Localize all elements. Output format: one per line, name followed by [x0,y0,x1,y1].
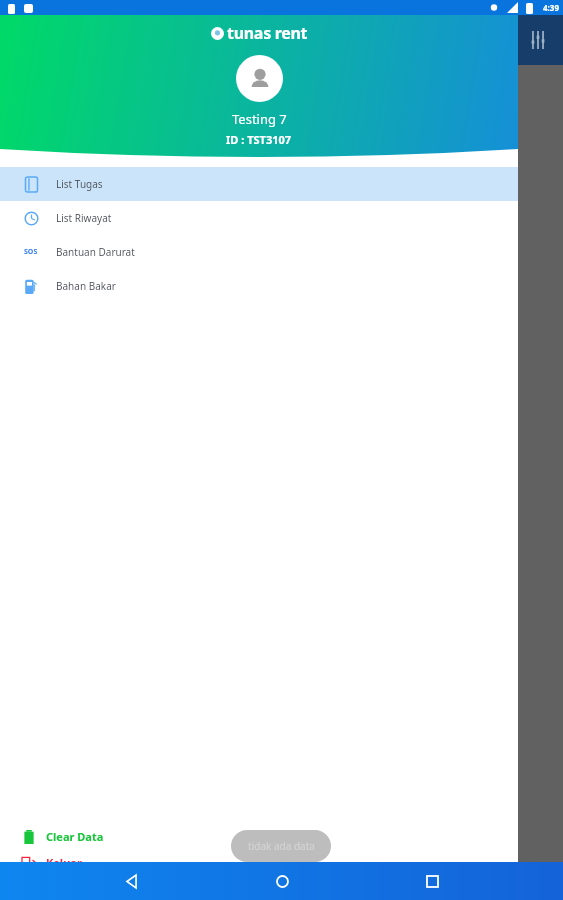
staticText: Bahan Bakar [56,279,116,293]
staticText: Testing 7 [232,110,287,128]
staticText: Bantuan Darurat [56,245,135,259]
button[interactable]: Bahan Bakar [0,269,518,303]
staticText: List Tugas [56,177,103,191]
staticText: 4:39 [543,2,559,13]
staticText: List Riwayat [56,211,112,225]
staticText: Clear Data [46,829,104,844]
button[interactable]: SOS [0,235,518,269]
staticText: Keluar [46,855,82,870]
button[interactable]: tidak ada data [231,830,331,862]
button[interactable]: List Riwayat [0,201,518,235]
staticText: tidak ada data [248,839,315,853]
staticText: SOS [24,247,38,257]
button[interactable]: Home [263,862,301,900]
button[interactable]: Clear Data [22,826,104,847]
button[interactable]: Keluar [22,852,82,873]
staticText: tunas rent [227,22,308,44]
button[interactable]: List Tugas [0,167,518,201]
staticText: ID : TST3107 [226,132,292,147]
button[interactable]: Filter [524,26,552,54]
button[interactable]: Recents [413,862,451,900]
button[interactable]: Back [112,862,150,900]
